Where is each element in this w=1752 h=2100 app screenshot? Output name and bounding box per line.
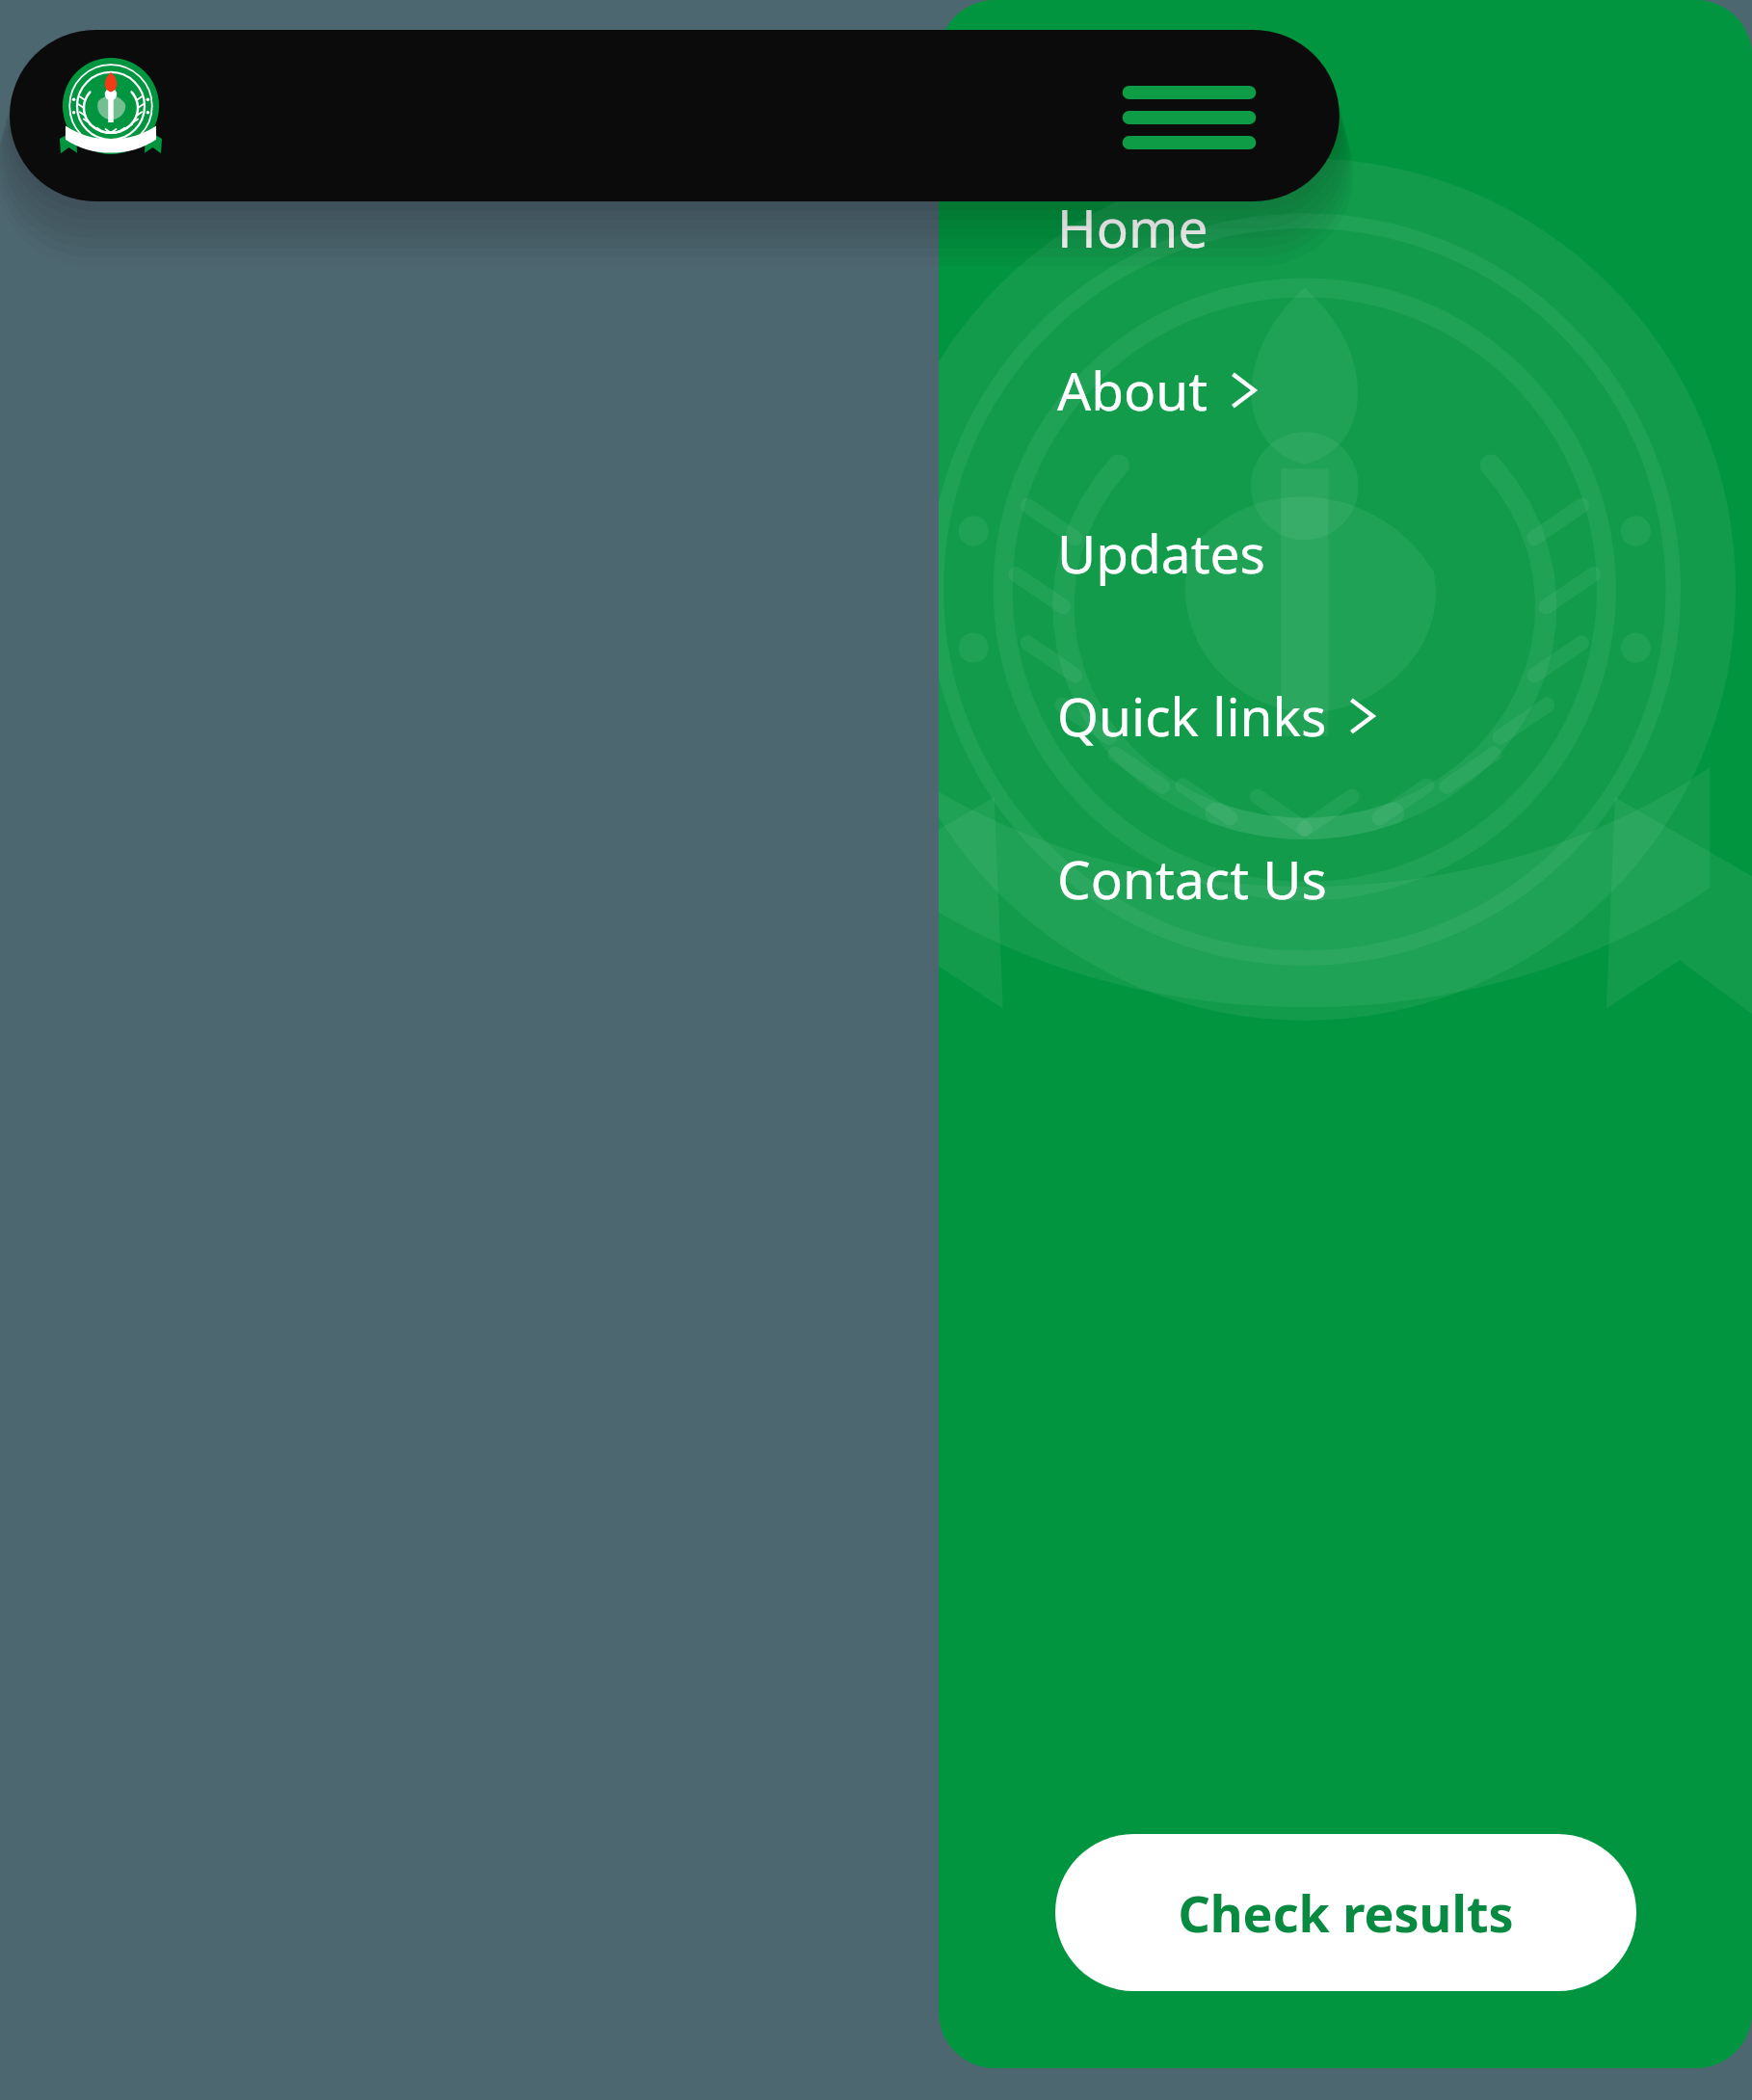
button[interactable]: About	[939, 346, 1752, 434]
staticText: Contact Us	[1057, 842, 1327, 915]
staticText: Check results	[1178, 1878, 1514, 1947]
button[interactable]: JAMB home	[48, 40, 173, 195]
button[interactable]: Open navigation menu	[1116, 67, 1262, 168]
staticText: Home	[1057, 191, 1208, 263]
staticText: Updates	[1057, 517, 1265, 589]
button[interactable]: Contact Us	[939, 835, 1752, 922]
button[interactable]: Updates	[939, 509, 1752, 597]
staticText: Quick links	[1057, 679, 1327, 752]
button[interactable]: Home	[939, 183, 1752, 271]
staticText: About	[1057, 354, 1208, 426]
button[interactable]: Check results	[1055, 1834, 1636, 1991]
button[interactable]: Quick links	[939, 672, 1752, 759]
